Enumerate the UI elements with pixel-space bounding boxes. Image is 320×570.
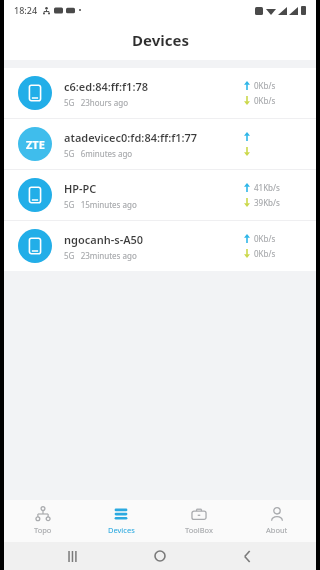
staticText: c6:ed:84:ff:f1:78 bbox=[64, 79, 148, 94]
staticText: Devices bbox=[132, 30, 189, 50]
button[interactable]: ToolBox bbox=[160, 500, 238, 542]
staticText: ngocanh-s-A50 bbox=[64, 232, 144, 247]
staticText: 0Kb/s bbox=[254, 80, 276, 91]
staticText: 39Kb/s bbox=[254, 197, 280, 208]
staticText: 0Kb/s bbox=[254, 248, 276, 259]
button[interactable]: ZTE bbox=[4, 119, 316, 169]
button[interactable]: ngocanh-s-A50 bbox=[4, 221, 316, 271]
staticText: Topo bbox=[34, 525, 52, 535]
staticText: 5G 15minutes ago bbox=[64, 199, 137, 210]
staticText: ToolBox bbox=[185, 525, 213, 535]
button[interactable]: Devices bbox=[82, 500, 160, 542]
staticText: 0Kb/s bbox=[254, 95, 276, 106]
staticText: ZTE bbox=[26, 137, 45, 152]
staticText: 0Kb/s bbox=[254, 233, 276, 244]
button[interactable]: Back bbox=[229, 542, 265, 570]
button[interactable]: Home bbox=[142, 542, 178, 570]
staticText: HP-PC bbox=[64, 181, 97, 196]
button[interactable]: Topo bbox=[4, 500, 82, 542]
staticText: 18:24 bbox=[14, 4, 38, 16]
button[interactable]: c6:ed:84:ff:f1:78 bbox=[4, 68, 316, 118]
staticText: About bbox=[266, 525, 288, 535]
button[interactable]: HP-PC bbox=[4, 170, 316, 220]
staticText: atadevicec0:fd:84:ff:f1:77 bbox=[64, 130, 198, 145]
staticText: Devices bbox=[108, 525, 135, 535]
staticText: 5G 6minutes ago bbox=[64, 148, 133, 159]
staticText: 41Kb/s bbox=[254, 182, 280, 193]
staticText: 5G 23hours ago bbox=[64, 97, 128, 108]
staticText: 5G 23minutes ago bbox=[64, 250, 137, 261]
button[interactable]: Recents bbox=[55, 542, 91, 570]
button[interactable]: About bbox=[238, 500, 316, 542]
